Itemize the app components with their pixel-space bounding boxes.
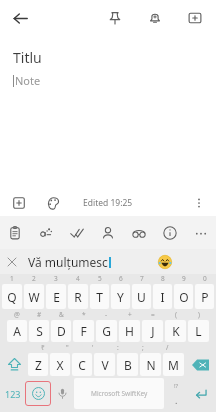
- staticText: Edited 19:25: [83, 197, 133, 209]
- staticText: F: [80, 323, 87, 339]
- button[interactable]: R: [68, 284, 88, 309]
- staticText: Note: [15, 73, 41, 88]
- staticText: ;: [142, 343, 144, 352]
- button[interactable]: Emoji: [25, 381, 51, 406]
- staticText: :: [117, 343, 119, 352]
- button[interactable]: S: [29, 320, 49, 342]
- staticText: 9: [182, 274, 186, 283]
- staticText: &: [59, 310, 64, 319]
- staticText: 1: [10, 274, 14, 283]
- staticText: S: [36, 323, 43, 339]
- button[interactable]: Pin: [102, 5, 128, 31]
- button[interactable]: B: [117, 353, 138, 376]
- staticText: (: [175, 310, 177, 319]
- button[interactable]: N: [140, 353, 161, 376]
- staticText: U: [137, 289, 146, 305]
- button[interactable]: V: [94, 353, 115, 376]
- staticText: C: [78, 357, 86, 373]
- staticText: Microsoft SwiftKey: [91, 389, 148, 398]
- staticText: W: [28, 289, 40, 305]
- button[interactable]: More options: [188, 192, 210, 214]
- staticText: J: [151, 323, 155, 339]
- button[interactable]: Add to: [182, 5, 208, 31]
- staticText: P: [201, 289, 209, 305]
- button[interactable]: Enter: [187, 378, 215, 409]
- button[interactable]: Back: [6, 4, 34, 32]
- button[interactable]: Punctuation: [165, 378, 187, 409]
- staticText: L: [195, 323, 202, 339]
- button[interactable]: C: [72, 353, 92, 376]
- staticText: I: [160, 289, 165, 305]
- staticText: 6: [119, 274, 123, 283]
- button[interactable]: Shift: [1, 353, 27, 376]
- button[interactable]: E: [46, 284, 66, 309]
- button[interactable]: Close suggestions: [3, 253, 21, 271]
- staticText: @: [14, 310, 20, 319]
- button[interactable]: W: [24, 284, 44, 309]
- button[interactable]: H: [119, 320, 140, 342]
- button[interactable]: Info: [154, 216, 185, 249]
- staticText: 7: [140, 274, 144, 283]
- staticText: Y: [117, 289, 124, 305]
- button[interactable]: F: [73, 320, 94, 342]
- button[interactable]: X: [50, 353, 70, 376]
- staticText: D: [57, 323, 66, 339]
- staticText: /: [166, 343, 169, 352]
- button[interactable]: Voice input: [51, 378, 73, 409]
- staticText: R: [74, 289, 82, 305]
- button[interactable]: Translate: [30, 216, 61, 249]
- staticText: M: [168, 357, 179, 373]
- button[interactable]: M: [163, 353, 184, 376]
- button[interactable]: O: [174, 284, 193, 309]
- button[interactable]: I: [153, 284, 172, 309]
- button[interactable]: K: [165, 320, 186, 342]
- button[interactable]: U: [132, 284, 151, 309]
- button[interactable]: Insert: [8, 192, 30, 214]
- staticText: *: [82, 310, 86, 319]
- staticText: Z: [35, 357, 42, 373]
- button[interactable]: L: [188, 320, 209, 342]
- button[interactable]: J: [142, 320, 163, 342]
- button[interactable]: Z: [28, 353, 48, 376]
- staticText: E: [53, 289, 60, 305]
- staticText: X: [56, 357, 64, 373]
- staticText: O: [179, 289, 189, 305]
- button[interactable]: P: [195, 284, 214, 309]
- staticText: 3: [54, 274, 58, 283]
- button[interactable]: Q: [2, 284, 22, 309]
- button[interactable]: Space: [74, 378, 164, 409]
- staticText: 4: [76, 274, 80, 283]
- button[interactable]: Contact: [92, 216, 123, 249]
- staticText: +: [128, 310, 132, 319]
- staticText: Q: [7, 289, 17, 305]
- button[interactable]: D: [51, 320, 71, 342]
- button[interactable]: Colour: [42, 192, 64, 214]
- staticText: G: [102, 323, 111, 339]
- button[interactable]: Y: [111, 284, 130, 309]
- button[interactable]: More: [185, 216, 216, 249]
- staticText: K: [172, 323, 180, 339]
- staticText: 2: [32, 274, 36, 283]
- button[interactable]: Backspace: [185, 353, 215, 376]
- button[interactable]: G: [96, 320, 117, 342]
- staticText: H: [125, 323, 134, 339]
- button[interactable]: Emoji suggestion: [155, 252, 175, 272]
- staticText: ": [66, 343, 69, 352]
- staticText: 123: [5, 388, 21, 400]
- button[interactable]: Incognito: [123, 216, 154, 249]
- staticText: V: [101, 357, 109, 373]
- button[interactable]: Spell check: [61, 216, 92, 249]
- staticText: Titlu: [13, 48, 42, 67]
- staticText: B: [124, 357, 132, 373]
- button[interactable]: Reminder: [142, 5, 168, 31]
- staticText: #: [37, 310, 42, 319]
- staticText: T: [96, 289, 103, 305]
- button[interactable]: Vă mulțumesc: [28, 254, 108, 270]
- staticText: A: [13, 323, 21, 339]
- staticText: ₹: [41, 343, 45, 352]
- button[interactable]: 123: [1, 378, 25, 409]
- staticText: ): [198, 310, 200, 319]
- button[interactable]: Clipboard: [0, 216, 30, 249]
- button[interactable]: A: [7, 320, 27, 342]
- button[interactable]: T: [90, 284, 109, 309]
